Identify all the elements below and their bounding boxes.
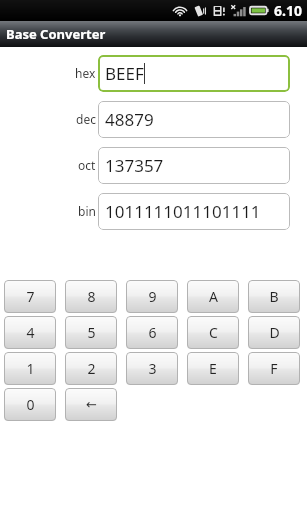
button[interactable]: 1 — [4, 352, 56, 385]
staticText: 8 — [87, 287, 96, 306]
staticText: 5 — [87, 323, 96, 342]
staticText: ← — [86, 397, 97, 412]
button[interactable]: 2 — [65, 352, 117, 385]
button[interactable]: 6 — [126, 316, 178, 349]
staticText: 3 — [148, 359, 157, 378]
button[interactable]: 7 — [4, 280, 56, 313]
button[interactable]: 137357 — [98, 147, 290, 184]
staticText: 48879 — [105, 108, 154, 131]
button[interactable]: 48879 — [98, 101, 290, 138]
staticText: BEEF — [105, 62, 144, 85]
button[interactable]: A — [187, 280, 239, 313]
staticText: 6.10 — [274, 1, 302, 20]
staticText: 4 — [26, 323, 35, 342]
staticText: 1011111011101111 — [105, 200, 261, 223]
staticText: F — [270, 359, 278, 378]
staticText: hex — [75, 65, 96, 81]
staticText: Base Converter — [6, 25, 106, 43]
staticText: 1 — [26, 359, 35, 378]
staticText: 6 — [148, 323, 157, 342]
button[interactable]: 8 — [65, 280, 117, 313]
staticText: B — [269, 287, 279, 306]
staticText: dec — [76, 111, 96, 127]
staticText: 137357 — [105, 154, 164, 177]
button[interactable]: 9 — [126, 280, 178, 313]
button[interactable]: B — [248, 280, 300, 313]
button[interactable]: D — [248, 316, 300, 349]
button[interactable]: 0 — [4, 388, 56, 421]
button[interactable]: Backspace — [65, 388, 117, 421]
staticText: bin — [78, 203, 96, 219]
staticText: oct — [78, 157, 96, 173]
staticText: D — [269, 323, 280, 342]
staticText: E — [209, 359, 217, 378]
button[interactable]: 5 — [65, 316, 117, 349]
staticText: 9 — [148, 287, 157, 306]
staticText: 7 — [26, 287, 35, 306]
button[interactable]: F — [248, 352, 300, 385]
staticText: A — [209, 287, 218, 306]
button[interactable]: 1011111011101111 — [98, 193, 290, 230]
staticText: 2 — [87, 359, 96, 378]
button[interactable]: 3 — [126, 352, 178, 385]
button[interactable]: BEEF — [98, 55, 290, 92]
button[interactable]: C — [187, 316, 239, 349]
staticText: C — [209, 323, 218, 342]
staticText: 0 — [26, 395, 35, 414]
button[interactable]: E — [187, 352, 239, 385]
button[interactable]: 4 — [4, 316, 56, 349]
